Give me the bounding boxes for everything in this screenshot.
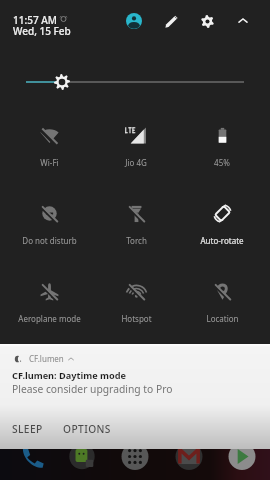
staticText: Hotspot bbox=[121, 313, 152, 324]
button[interactable]: OPTIONS bbox=[54, 417, 120, 441]
staticText: Do not disturb bbox=[22, 235, 77, 246]
button[interactable]: Do not disturb bbox=[6, 182, 93, 260]
button[interactable]: Hotspot bbox=[93, 260, 179, 338]
staticText: Wed, 15 Feb bbox=[13, 24, 71, 38]
button[interactable]: User account bbox=[121, 8, 147, 34]
button[interactable]: Settings bbox=[194, 8, 220, 34]
button[interactable]: Auto-rotate bbox=[179, 182, 265, 260]
staticText: Wi-Fi bbox=[40, 157, 59, 168]
staticText: OPTIONS bbox=[63, 422, 111, 436]
button[interactable]: SLEEP bbox=[3, 417, 52, 441]
button[interactable]: 45% bbox=[179, 104, 265, 182]
button[interactable]: Location bbox=[179, 260, 265, 338]
staticText: Jio 4G bbox=[125, 157, 147, 168]
staticText: Auto-rotate bbox=[200, 235, 244, 246]
button[interactable]: Edit tiles bbox=[158, 8, 184, 34]
button[interactable]: Torch bbox=[93, 182, 179, 260]
staticText: CF.lumen: Daytime mode bbox=[12, 369, 127, 382]
staticText: 45% bbox=[214, 157, 230, 168]
staticText: Please consider upgrading to Pro bbox=[12, 382, 173, 396]
staticText: CF.lumen bbox=[29, 353, 64, 364]
button[interactable]: Jio 4G bbox=[93, 104, 179, 182]
button[interactable]: Wi-Fi bbox=[6, 104, 93, 182]
button[interactable]: Collapse bbox=[230, 8, 256, 34]
staticText: Torch bbox=[126, 235, 147, 246]
staticText: Aeroplane mode bbox=[18, 313, 81, 324]
button[interactable]: Aeroplane mode bbox=[6, 260, 93, 338]
staticText: 11:57 AM bbox=[13, 13, 57, 27]
button[interactable]: Brightness bbox=[0, 70, 270, 94]
staticText: Location bbox=[206, 313, 239, 324]
staticText: SLEEP bbox=[12, 422, 43, 436]
